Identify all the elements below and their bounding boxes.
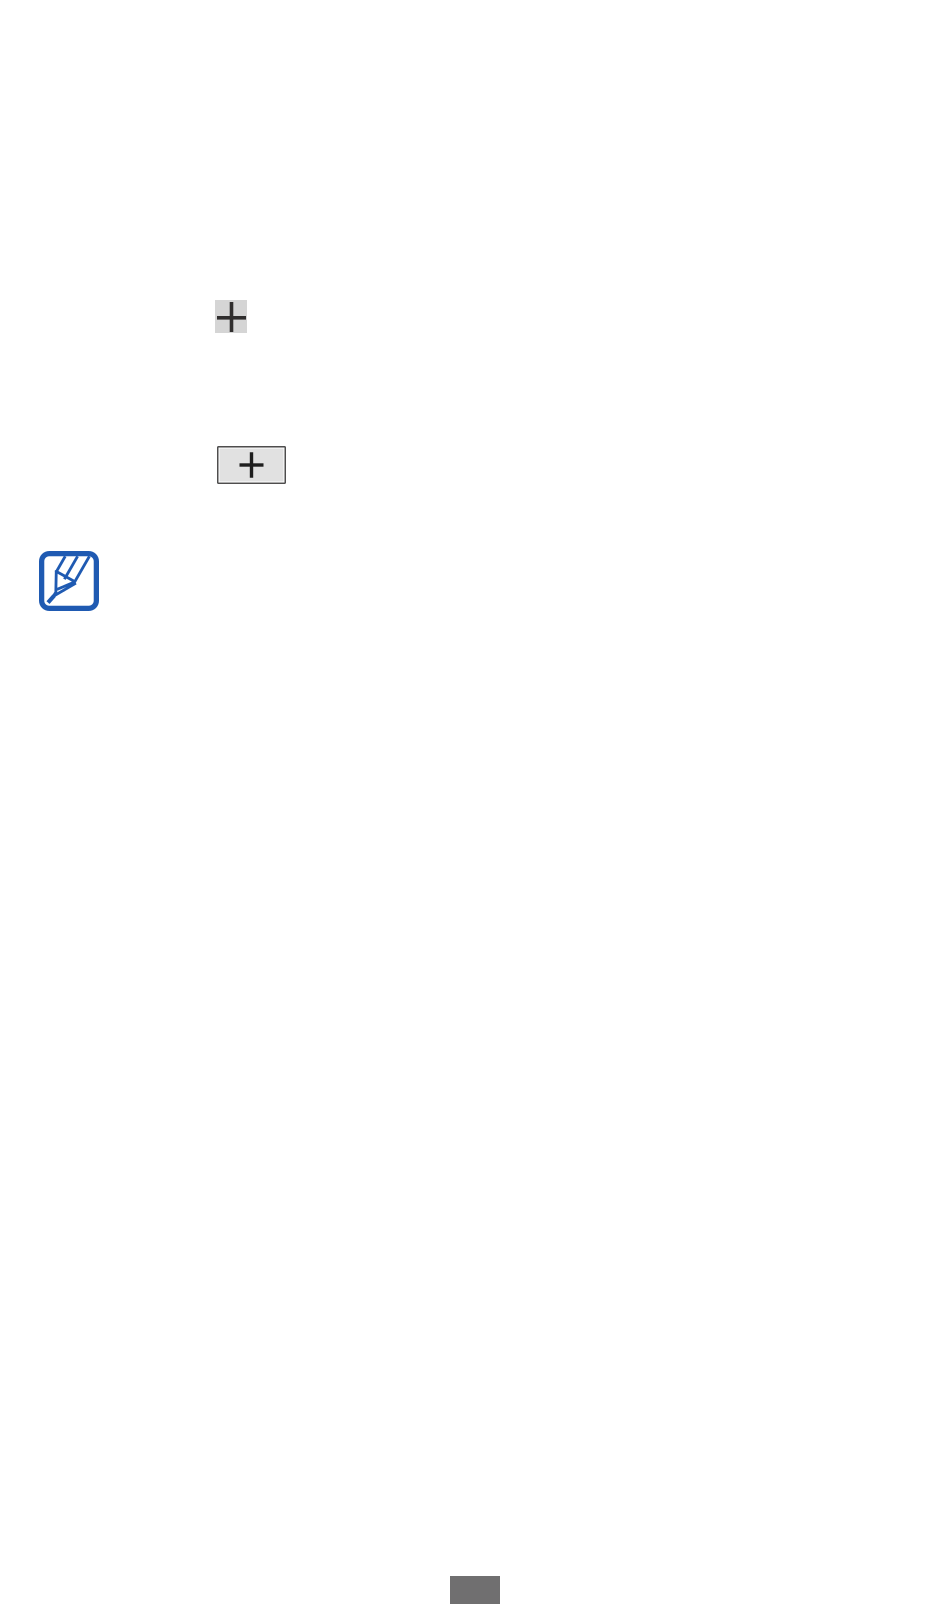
button[interactable]: Add <box>215 300 247 333</box>
button[interactable]: Add <box>217 446 286 484</box>
button[interactable]: S Memo <box>39 551 99 611</box>
